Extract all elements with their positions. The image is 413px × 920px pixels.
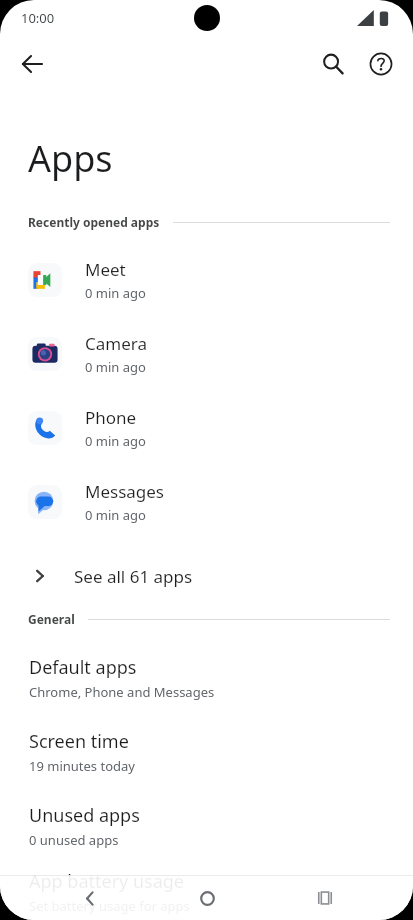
button[interactable]: App battery usage: [0, 863, 413, 920]
staticText: Screen time: [29, 729, 129, 754]
staticText: Default apps: [29, 655, 137, 680]
staticText: Recently opened apps: [28, 214, 160, 230]
staticText: 0 unused apps: [29, 831, 119, 849]
button[interactable]: Default apps: [0, 641, 413, 715]
button[interactable]: Home: [187, 878, 227, 918]
staticText: App battery usage: [29, 869, 184, 894]
staticText: 0 min ago: [85, 506, 146, 524]
staticText: 0 min ago: [85, 358, 146, 376]
button[interactable]: Search: [309, 40, 357, 88]
staticText: Apps: [28, 134, 113, 183]
button[interactable]: Screen time: [0, 715, 413, 789]
button[interactable]: Back: [8, 40, 56, 88]
button[interactable]: Meet: [0, 243, 413, 317]
button[interactable]: See all 61 apps: [0, 553, 413, 599]
button[interactable]: Back: [70, 878, 110, 918]
staticText: Messages: [85, 480, 165, 503]
staticText: Set battery usage for apps: [29, 897, 190, 915]
staticText: See all 61 apps: [74, 565, 193, 588]
staticText: 0 min ago: [85, 284, 146, 302]
staticText: Unused apps: [29, 803, 140, 828]
button[interactable]: Messages: [0, 465, 413, 539]
staticText: 19 minutes today: [29, 757, 135, 775]
staticText: 10:00: [21, 9, 55, 27]
button[interactable]: Camera: [0, 317, 413, 391]
staticText: Camera: [85, 332, 147, 355]
staticText: Phone: [85, 406, 137, 429]
staticText: Meet: [85, 258, 126, 281]
button[interactable]: Unused apps: [0, 789, 413, 863]
button[interactable]: Phone: [0, 391, 413, 465]
staticText: Chrome, Phone and Messages: [29, 683, 215, 701]
button[interactable]: Help: [357, 40, 405, 88]
staticText: General: [28, 611, 75, 627]
staticText: 0 min ago: [85, 432, 146, 450]
button[interactable]: Recent apps: [305, 878, 345, 918]
